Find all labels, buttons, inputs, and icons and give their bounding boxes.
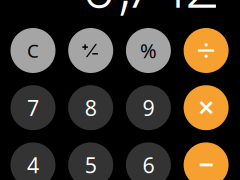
- button[interactable]: %: [0, 0, 240, 180]
- staticText: 0: [81, 0, 116, 25]
- button[interactable]: Divide: [0, 0, 240, 180]
- button[interactable]: Multiply: [0, 0, 240, 180]
- staticText: 7: [27, 93, 39, 122]
- staticText: 4: [27, 151, 39, 179]
- button[interactable]: 8: [0, 0, 240, 180]
- staticText: 8: [85, 93, 97, 122]
- button[interactable]: Plus minus: [0, 0, 240, 180]
- button[interactable]: 9: [0, 0, 240, 180]
- button[interactable]: 6: [0, 0, 240, 180]
- staticText: 6: [142, 151, 154, 179]
- staticText: ,: [118, 0, 132, 25]
- button[interactable]: 7: [0, 0, 240, 180]
- staticText: 7: [122, 0, 157, 25]
- button[interactable]: 4: [0, 0, 240, 180]
- staticText: 9: [142, 93, 154, 122]
- button[interactable]: 5: [0, 0, 240, 180]
- button[interactable]: C: [0, 0, 240, 180]
- staticText: %: [140, 37, 157, 64]
- staticText: 2: [185, 0, 220, 25]
- button[interactable]: Minus: [0, 0, 240, 180]
- staticText: C: [27, 38, 39, 63]
- staticText: 1: [159, 0, 194, 25]
- staticText: 5: [85, 151, 97, 179]
